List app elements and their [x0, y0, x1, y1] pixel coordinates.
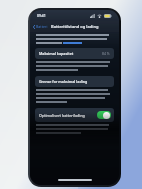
- staticText: Optimalisert batterilading: [39, 113, 85, 118]
- button[interactable]: Optimalisert batterilading: [35, 108, 114, 122]
- staticText: Batteritilstand og lading: [51, 24, 99, 29]
- staticText: Maksimal kapasitet: [39, 51, 74, 56]
- button[interactable]: Optimalisert batterilading toggle: [97, 111, 111, 119]
- button[interactable]: Maksimal kapasitet: [35, 48, 114, 59]
- staticText: Grense for maksimal lading: [39, 79, 88, 84]
- staticText: 84 %: [102, 51, 110, 56]
- staticText: 09:41: [37, 13, 46, 18]
- staticText: Batteri: [36, 24, 48, 29]
- button[interactable]: Back: [30, 22, 51, 31]
- button[interactable]: Grense for maksimal lading: [35, 76, 114, 87]
